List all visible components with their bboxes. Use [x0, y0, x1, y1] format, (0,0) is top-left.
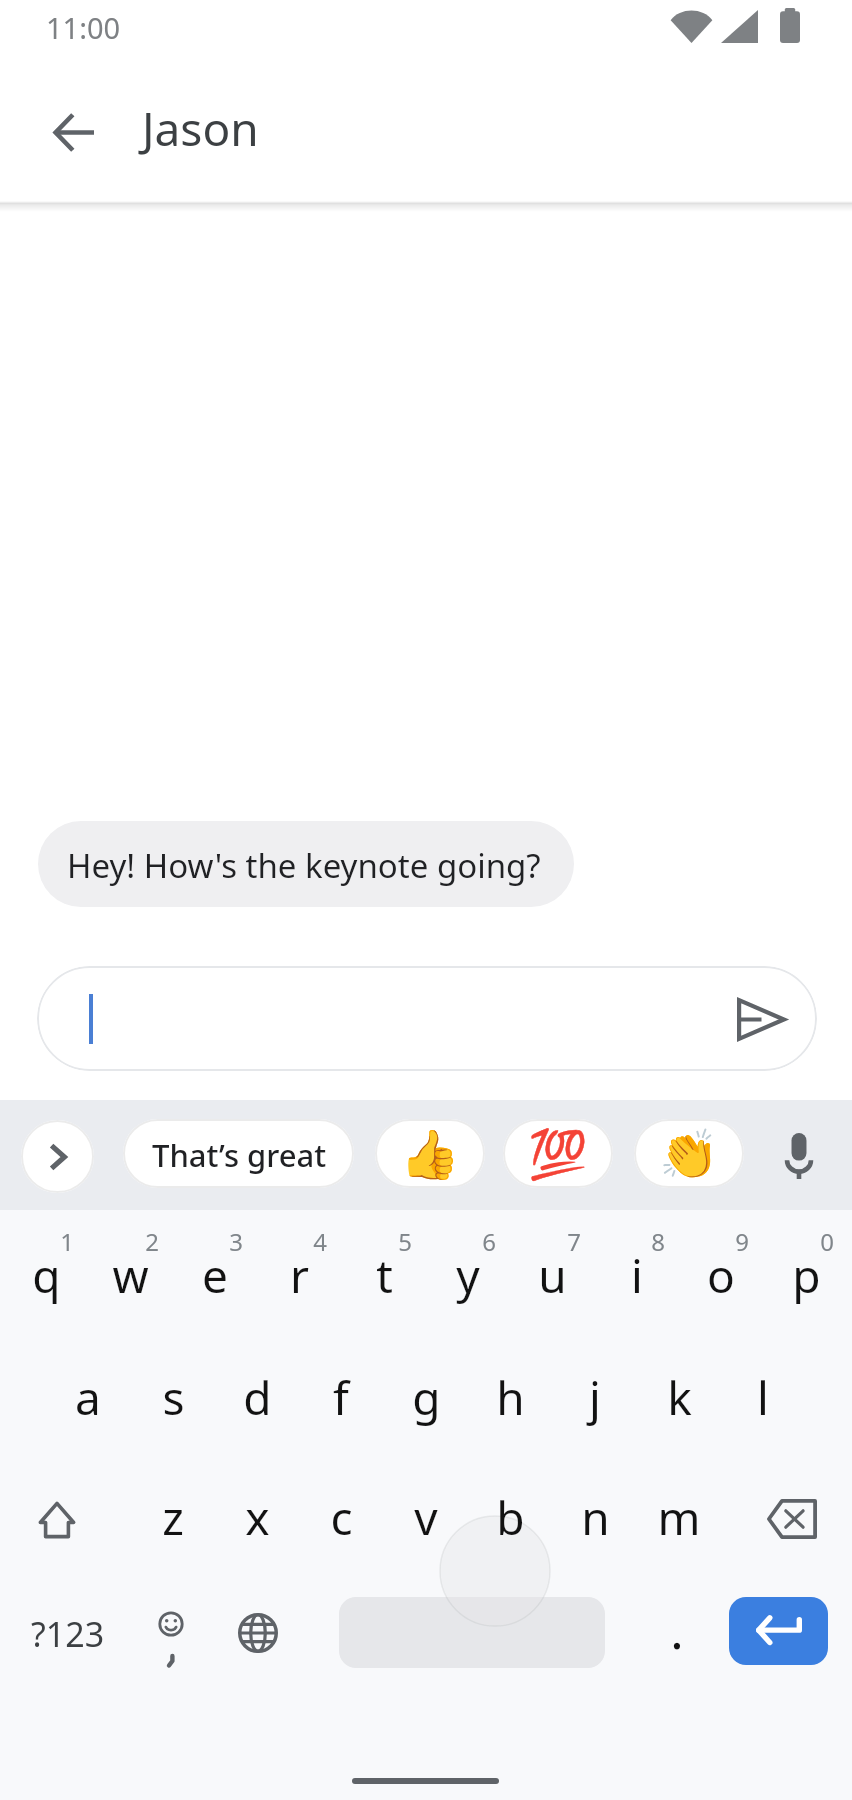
staticText: f: [333, 1366, 349, 1429]
button[interactable]: [384, 1332, 468, 1452]
staticText: y: [456, 1244, 480, 1307]
button[interactable]: [299, 1332, 383, 1452]
staticText: k: [667, 1366, 692, 1429]
staticText: l: [757, 1366, 769, 1429]
staticText: 8: [651, 1225, 665, 1258]
button[interactable]: Emoji suggestion: [634, 1119, 744, 1188]
button[interactable]: [173, 1210, 257, 1332]
button[interactable]: [131, 1332, 215, 1452]
button[interactable]: [426, 1210, 510, 1332]
button[interactable]: [637, 1332, 721, 1452]
staticText: e: [202, 1244, 228, 1307]
button[interactable]: [468, 1452, 552, 1572]
button[interactable]: More suggestions: [21, 1120, 94, 1193]
button[interactable]: Emoji suggestion: [375, 1119, 485, 1188]
staticText: u: [538, 1244, 567, 1307]
button[interactable]: Shift: [4, 1452, 131, 1572]
button[interactable]: Switch language: [215, 1572, 299, 1698]
staticText: .: [670, 1596, 684, 1664]
staticText: 0: [820, 1225, 834, 1258]
button[interactable]: [510, 1210, 594, 1332]
button[interactable]: Send: [725, 983, 798, 1056]
button[interactable]: [257, 1210, 341, 1332]
button[interactable]: [88, 1210, 172, 1332]
staticText: s: [162, 1366, 185, 1429]
staticText: 👍: [400, 1126, 460, 1182]
staticText: 7: [567, 1225, 581, 1258]
staticText: w: [112, 1244, 149, 1307]
button[interactable]: [342, 1210, 426, 1332]
button[interactable]: Emoji: [131, 1572, 215, 1698]
staticText: 👏: [659, 1126, 719, 1182]
staticText: n: [581, 1486, 610, 1549]
button[interactable]: [46, 1332, 130, 1452]
button[interactable]: [595, 1210, 679, 1332]
staticText: c: [330, 1486, 353, 1549]
staticText: p: [792, 1244, 821, 1307]
staticText: 2: [145, 1225, 159, 1258]
button[interactable]: [764, 1210, 848, 1332]
button[interactable]: [123, 1119, 354, 1188]
staticText: i: [631, 1244, 643, 1307]
button[interactable]: Backspace: [721, 1452, 848, 1572]
staticText: o: [707, 1244, 735, 1307]
staticText: 6: [482, 1225, 496, 1258]
staticText: 5: [398, 1225, 412, 1258]
button[interactable]: Symbols: [4, 1572, 131, 1698]
button[interactable]: [553, 1452, 637, 1572]
staticText: g: [412, 1366, 441, 1429]
staticText: d: [243, 1366, 272, 1429]
staticText: r: [290, 1244, 309, 1307]
staticText: 11:00: [46, 8, 121, 47]
staticText: t: [376, 1244, 393, 1307]
staticText: m: [657, 1486, 701, 1549]
button[interactable]: [215, 1332, 299, 1452]
staticText: 9: [735, 1225, 749, 1258]
staticText: b: [496, 1486, 525, 1549]
staticText: 3: [229, 1225, 243, 1258]
staticText: x: [245, 1486, 270, 1549]
button[interactable]: Period: [620, 1572, 702, 1698]
button[interactable]: Enter: [729, 1597, 828, 1665]
staticText: z: [162, 1486, 184, 1549]
button[interactable]: Voice input: [762, 1119, 835, 1192]
button[interactable]: [384, 1452, 468, 1572]
staticText: v: [414, 1486, 438, 1549]
button[interactable]: [637, 1452, 721, 1572]
staticText: Hey! How's the keynote going?: [67, 843, 541, 888]
staticText: q: [32, 1244, 61, 1307]
button[interactable]: [721, 1332, 805, 1452]
button[interactable]: [553, 1332, 637, 1452]
staticText: 4: [313, 1225, 327, 1258]
button[interactable]: [299, 1452, 383, 1572]
button[interactable]: [468, 1332, 552, 1452]
staticText: 💯: [528, 1126, 588, 1182]
staticText: 1: [60, 1225, 74, 1258]
button[interactable]: Send: [37, 966, 817, 1071]
staticText: j: [589, 1366, 601, 1429]
staticText: a: [75, 1366, 101, 1429]
button[interactable]: [4, 1210, 88, 1332]
button[interactable]: Emoji suggestion: [503, 1119, 613, 1188]
staticText: ?123: [31, 1611, 105, 1657]
staticText: h: [496, 1366, 525, 1429]
button[interactable]: [38, 821, 574, 907]
button[interactable]: [131, 1452, 215, 1572]
staticText: Jason: [142, 97, 259, 160]
staticText: That’s great: [152, 1134, 327, 1176]
button[interactable]: [679, 1210, 763, 1332]
button[interactable]: Back: [28, 87, 119, 178]
button[interactable]: [215, 1452, 299, 1572]
